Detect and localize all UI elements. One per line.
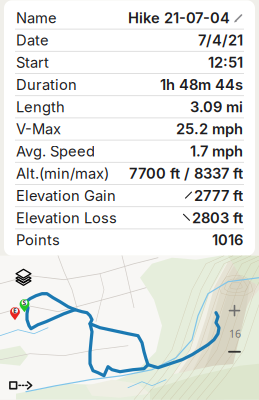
staticText: 12:51 bbox=[208, 53, 243, 71]
button[interactable]: Start bbox=[4, 52, 255, 73]
staticText: 2777 ft bbox=[194, 187, 243, 204]
staticText: Start bbox=[16, 53, 49, 71]
button[interactable]: Date bbox=[4, 29, 255, 51]
staticText: Hike 21-07-04 bbox=[128, 9, 230, 27]
staticText: Avg. Speed bbox=[16, 142, 95, 160]
staticText: Elevation Gain bbox=[16, 187, 116, 204]
staticText: Length bbox=[16, 98, 65, 116]
staticText: V-Max bbox=[16, 120, 61, 138]
staticText: 1h 48m 44s bbox=[160, 76, 243, 93]
staticText: 25.2 mph bbox=[176, 120, 243, 138]
button[interactable]: Length bbox=[4, 96, 255, 117]
button[interactable]: Name bbox=[4, 7, 255, 29]
staticText: Duration bbox=[16, 76, 77, 93]
button[interactable]: Fit track bbox=[9, 381, 35, 391]
button[interactable]: Alt.(min/max) bbox=[4, 163, 255, 184]
button[interactable]: Duration bbox=[4, 74, 255, 95]
staticText: 1.7 mph bbox=[190, 142, 243, 160]
staticText: 3.09 mi bbox=[190, 98, 243, 116]
button[interactable]: V-Max bbox=[4, 118, 255, 140]
staticText: Elevation Loss bbox=[16, 209, 117, 227]
staticText: 7/4/21 bbox=[198, 31, 243, 49]
staticText: Date bbox=[16, 31, 49, 49]
staticText: S bbox=[22, 298, 26, 307]
staticText: 7700 ft / 8337 ft bbox=[129, 164, 243, 182]
staticText: 16 bbox=[229, 327, 241, 341]
staticText: Alt.(min/max) bbox=[16, 164, 109, 182]
staticText: E bbox=[13, 306, 17, 315]
button[interactable]: Elevation Gain bbox=[4, 185, 255, 206]
staticText: Name bbox=[16, 9, 57, 27]
staticText: 1016 bbox=[212, 231, 243, 249]
button[interactable]: Map layers bbox=[15, 269, 31, 285]
staticText: 2803 ft bbox=[192, 209, 243, 227]
staticText: Points bbox=[16, 231, 60, 249]
button[interactable]: Zoom out bbox=[229, 351, 241, 354]
button[interactable]: Points bbox=[4, 229, 255, 251]
button[interactable]: Zoom in bbox=[229, 306, 240, 317]
button[interactable]: Elevation Loss bbox=[4, 207, 255, 228]
button[interactable]: Avg. Speed bbox=[4, 140, 255, 162]
